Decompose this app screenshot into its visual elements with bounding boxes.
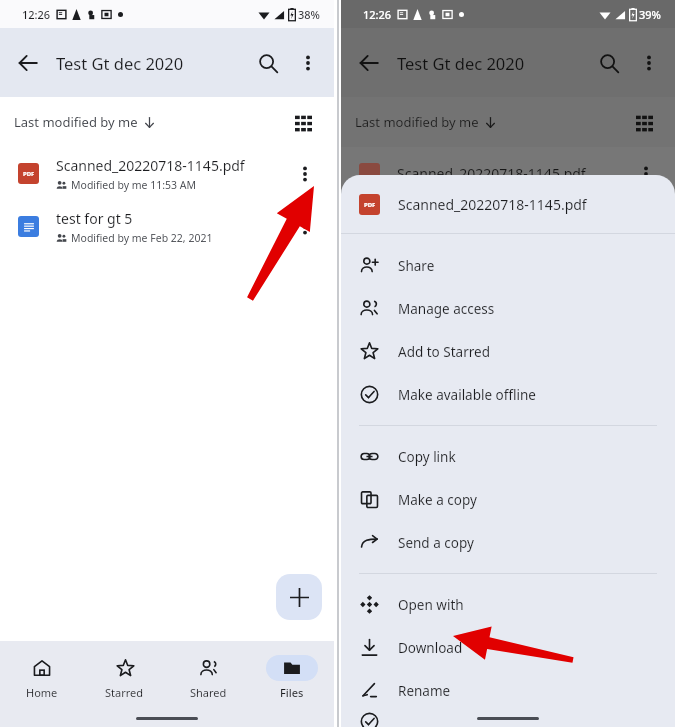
button[interactable]: Home [0, 655, 83, 700]
button[interactable] [341, 712, 675, 727]
staticText: Test Gt dec 2020 [397, 52, 525, 74]
staticText: Make available offline [398, 386, 536, 404]
staticText: 12:26 [22, 7, 51, 22]
button[interactable]: Starred [83, 655, 166, 700]
staticText: Scanned_20220718-1145.pdf [56, 156, 245, 175]
staticText: test for gt 5 [56, 209, 133, 228]
staticText: PDF [23, 170, 35, 178]
staticText: Copy link [398, 448, 456, 466]
staticText: Shared [190, 685, 227, 700]
button[interactable]: Last modified by me [14, 113, 156, 131]
button[interactable]: Share [341, 244, 675, 287]
staticText: Last modified by me [14, 113, 138, 131]
staticText: Modified by me 11:53 AM [71, 178, 197, 192]
button[interactable]: Files [250, 655, 334, 700]
staticText: 38% [298, 7, 320, 22]
button[interactable]: Rename [341, 669, 675, 712]
button[interactable]: Open with [341, 583, 675, 626]
button[interactable]: Download [341, 626, 675, 669]
staticText: Starred [105, 685, 144, 700]
staticText: Scanned_20220718-1145.pdf [397, 164, 586, 183]
button[interactable]: Grid view [284, 103, 322, 141]
staticText: Home [26, 685, 58, 700]
button[interactable]: Manage access [341, 287, 675, 330]
staticText: Download [398, 639, 463, 657]
button[interactable]: test for gt 5 [0, 200, 334, 253]
button[interactable]: Add to Starred [341, 330, 675, 373]
staticText: 39% [639, 7, 661, 22]
button[interactable]: More actions [288, 157, 322, 191]
staticText: Share [398, 257, 435, 275]
staticText: Manage access [398, 300, 495, 318]
button[interactable]: PDF [341, 175, 675, 233]
staticText: Rename [398, 682, 451, 700]
staticText: Send a copy [398, 534, 474, 552]
button[interactable]: PDF [0, 147, 334, 200]
button[interactable]: Back [8, 43, 48, 83]
button[interactable]: More options [288, 43, 328, 83]
staticText: PDF [364, 201, 376, 209]
staticText: Make a copy [398, 491, 477, 509]
button[interactable]: Create new [276, 574, 322, 620]
staticText: Open with [398, 596, 464, 614]
staticText: Test Gt dec 2020 [56, 52, 184, 74]
staticText: 12:26 [363, 7, 392, 22]
button[interactable]: Make a copy [341, 478, 675, 521]
button[interactable]: Shared [166, 655, 250, 700]
button[interactable]: Search [248, 43, 288, 83]
button[interactable]: More actions [288, 210, 322, 244]
staticText: Add to Starred [398, 343, 490, 361]
button[interactable]: Copy link [341, 435, 675, 478]
staticText: Scanned_20220718-1145.pdf [398, 195, 587, 214]
button[interactable]: Make available offline [341, 373, 675, 416]
staticText: Modified by me Feb 22, 2021 [71, 231, 213, 245]
button[interactable]: Send a copy [341, 521, 675, 564]
staticText: Files [280, 685, 304, 700]
staticText: Last modified by me [355, 113, 479, 131]
